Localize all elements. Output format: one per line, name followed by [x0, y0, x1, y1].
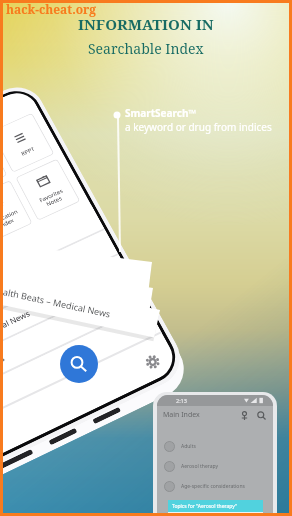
staticText: 2:13	[176, 397, 187, 404]
staticText: Age-specific considerations	[181, 483, 245, 490]
button[interactable]: Procedures	[0, 312, 150, 427]
button[interactable]: Settings	[138, 348, 166, 375]
button[interactable]: Aerosol therapy	[164, 456, 273, 476]
staticText: a keyword or drug from indices	[125, 120, 272, 134]
button[interactable]: Age-specific considerations	[164, 476, 273, 496]
button[interactable]: Medication Index	[0, 180, 33, 243]
button[interactable]: Intravenous AI	[0, 210, 94, 318]
button[interactable]: Favorites Notes	[15, 158, 81, 221]
staticText: INFORMATION IN	[78, 14, 214, 34]
button[interactable]: Injury	[0, 235, 107, 345]
button[interactable]: Bland Aerosol Administration Algorithm	[168, 512, 263, 516]
staticText: RPPT	[20, 145, 36, 158]
staticText: Health Beats – Medical News	[0, 307, 32, 364]
staticText: Medication Index	[0, 208, 22, 233]
staticText: hack-cheat.org	[6, 1, 97, 17]
staticText: Topics for "Aerosol therapy"	[172, 503, 237, 510]
staticText: Searchable Index	[88, 39, 204, 58]
button[interactable]: Respiratory Care	[0, 134, 7, 194]
button[interactable]: Filter	[238, 409, 250, 421]
staticText: Drug Interactions	[0, 352, 7, 392]
button[interactable]: Topics for "Aerosol therapy"	[168, 500, 263, 512]
staticText: Adults	[181, 443, 196, 450]
button[interactable]: Search	[60, 345, 98, 383]
button[interactable]: Drug Interactions	[0, 285, 135, 399]
staticText: Health Beats – Medical News	[0, 283, 112, 320]
staticText: Aerosol therapy	[181, 463, 219, 470]
button[interactable]: Adults	[164, 436, 273, 456]
button[interactable]: Health Beats – Medical News	[0, 260, 121, 371]
staticText: Main Index	[163, 410, 200, 420]
button[interactable]: Search	[255, 409, 267, 421]
staticText: SmartSearch™	[125, 106, 197, 120]
button[interactable]: RPPT	[0, 113, 55, 173]
staticText: Favorites Notes	[38, 187, 67, 210]
